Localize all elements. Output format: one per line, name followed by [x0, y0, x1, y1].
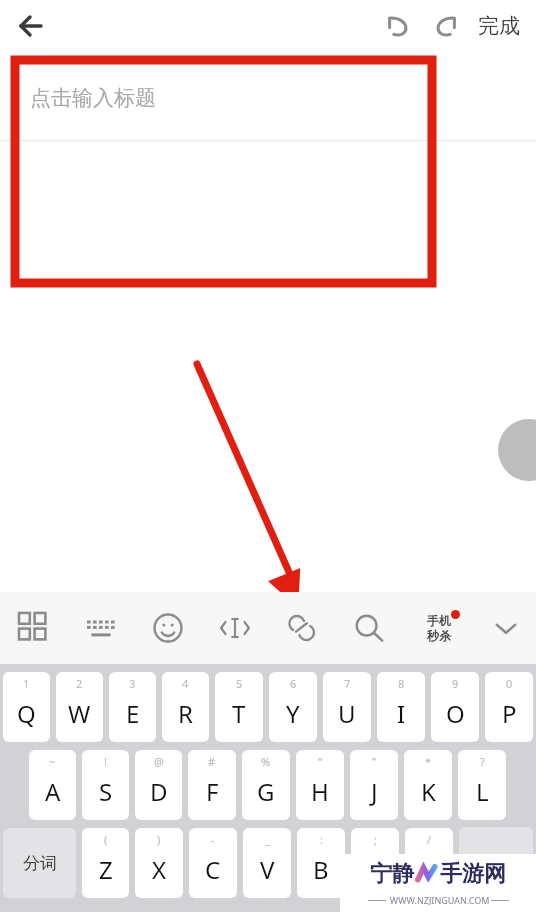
staticText: Q	[17, 697, 36, 730]
staticText: ~	[49, 754, 56, 769]
button[interactable]: 4	[162, 672, 209, 742]
button[interactable]: Clip	[268, 592, 335, 664]
staticText: L	[476, 775, 489, 808]
staticText: 2	[76, 676, 83, 691]
button[interactable]: 1	[3, 672, 50, 742]
button[interactable]: Text cursor	[201, 592, 268, 664]
staticText: W	[68, 697, 91, 730]
button[interactable]: Backspace	[459, 827, 533, 899]
button[interactable]: 5	[215, 672, 263, 742]
button[interactable]: 3	[109, 672, 156, 742]
staticText: F	[206, 775, 219, 808]
staticText: 分词	[23, 853, 57, 874]
staticText: Z	[99, 853, 113, 886]
button[interactable]: (	[82, 828, 129, 898]
staticText: !	[104, 754, 107, 769]
staticText: D	[150, 775, 168, 808]
button[interactable]: 点击输入标题	[0, 56, 536, 140]
staticText: P	[502, 697, 517, 730]
button[interactable]: ?	[458, 750, 506, 820]
staticText: O	[446, 697, 465, 730]
staticText: #	[208, 754, 216, 769]
button[interactable]: 8	[377, 672, 425, 742]
button[interactable]: #	[188, 750, 236, 820]
button[interactable]: 0	[485, 672, 533, 742]
button[interactable]: Undo	[374, 2, 422, 50]
button[interactable]: “	[296, 750, 344, 820]
staticText: J	[371, 775, 378, 808]
staticText: 6	[290, 676, 297, 691]
staticText: ;	[374, 832, 377, 847]
button[interactable]: !	[82, 750, 129, 820]
button[interactable]: -	[189, 828, 237, 898]
staticText: *	[425, 754, 432, 769]
staticText: 手机	[427, 613, 451, 628]
button[interactable]: ~	[29, 750, 76, 820]
staticText: T	[232, 697, 246, 730]
staticText: C	[205, 853, 221, 886]
staticText: ?	[480, 754, 485, 769]
button[interactable]: )	[135, 828, 183, 898]
button[interactable]: Search	[335, 592, 402, 664]
staticText: )	[157, 832, 161, 847]
staticText: %	[261, 754, 271, 769]
staticText: S	[99, 775, 113, 808]
staticText: 宁静	[370, 860, 414, 888]
button[interactable]: Back	[8, 3, 54, 49]
staticText: E	[126, 697, 140, 730]
staticText: 3	[129, 676, 136, 691]
button[interactable]: 6	[269, 672, 317, 742]
button[interactable]: @	[135, 750, 182, 820]
staticText: G	[257, 775, 275, 808]
staticText: I	[397, 697, 406, 730]
staticText: (	[104, 832, 108, 847]
staticText: @	[154, 754, 164, 769]
staticText: 1	[23, 676, 30, 691]
staticText: 4	[182, 676, 189, 691]
button[interactable]: /	[405, 828, 453, 898]
staticText: R	[178, 697, 193, 730]
staticText: N	[366, 853, 385, 886]
button[interactable]: 9	[431, 672, 479, 742]
button[interactable]: 2	[56, 672, 103, 742]
staticText: 8	[398, 676, 405, 691]
button[interactable]: Redo	[422, 2, 470, 50]
button[interactable]: Hide keyboard	[476, 592, 536, 664]
staticText: 手游网	[440, 860, 506, 888]
staticText: :	[320, 832, 323, 847]
button[interactable]: ;	[351, 828, 399, 898]
staticText: WWW.NZJINGUAN.COM	[386, 894, 491, 906]
staticText: 秒杀	[427, 628, 451, 643]
staticText: /	[427, 832, 432, 847]
button[interactable]: 7	[323, 672, 371, 742]
staticText: “	[318, 754, 322, 769]
staticText: ”	[372, 754, 376, 769]
button[interactable]: 完成	[478, 2, 520, 50]
button[interactable]: %	[242, 750, 290, 820]
button[interactable]: :	[297, 828, 345, 898]
button[interactable]: 分词	[3, 828, 76, 898]
staticText: 9	[452, 676, 459, 691]
button[interactable]: ”	[350, 750, 398, 820]
button[interactable]: *	[404, 750, 452, 820]
staticText: V	[260, 853, 275, 886]
staticText: 0	[506, 676, 513, 691]
staticText: H	[311, 775, 329, 808]
staticText: -	[211, 832, 215, 847]
staticText: Y	[286, 697, 300, 730]
staticText: U	[338, 697, 356, 730]
button[interactable]: 手机	[402, 592, 476, 664]
staticText: 点击输入标题	[30, 85, 156, 111]
button[interactable]: Panels	[0, 592, 67, 664]
staticText: X	[152, 853, 167, 886]
button[interactable]: Emoji	[134, 592, 201, 664]
button[interactable]: _	[243, 828, 291, 898]
staticText: 7	[344, 676, 351, 691]
staticText: M	[418, 853, 440, 886]
button[interactable]: Floating tool	[498, 419, 536, 481]
button[interactable]: Keyboard	[67, 592, 134, 664]
staticText: K	[421, 775, 436, 808]
staticText: A	[45, 775, 61, 808]
button[interactable]	[0, 141, 536, 286]
staticText: _	[265, 832, 270, 847]
